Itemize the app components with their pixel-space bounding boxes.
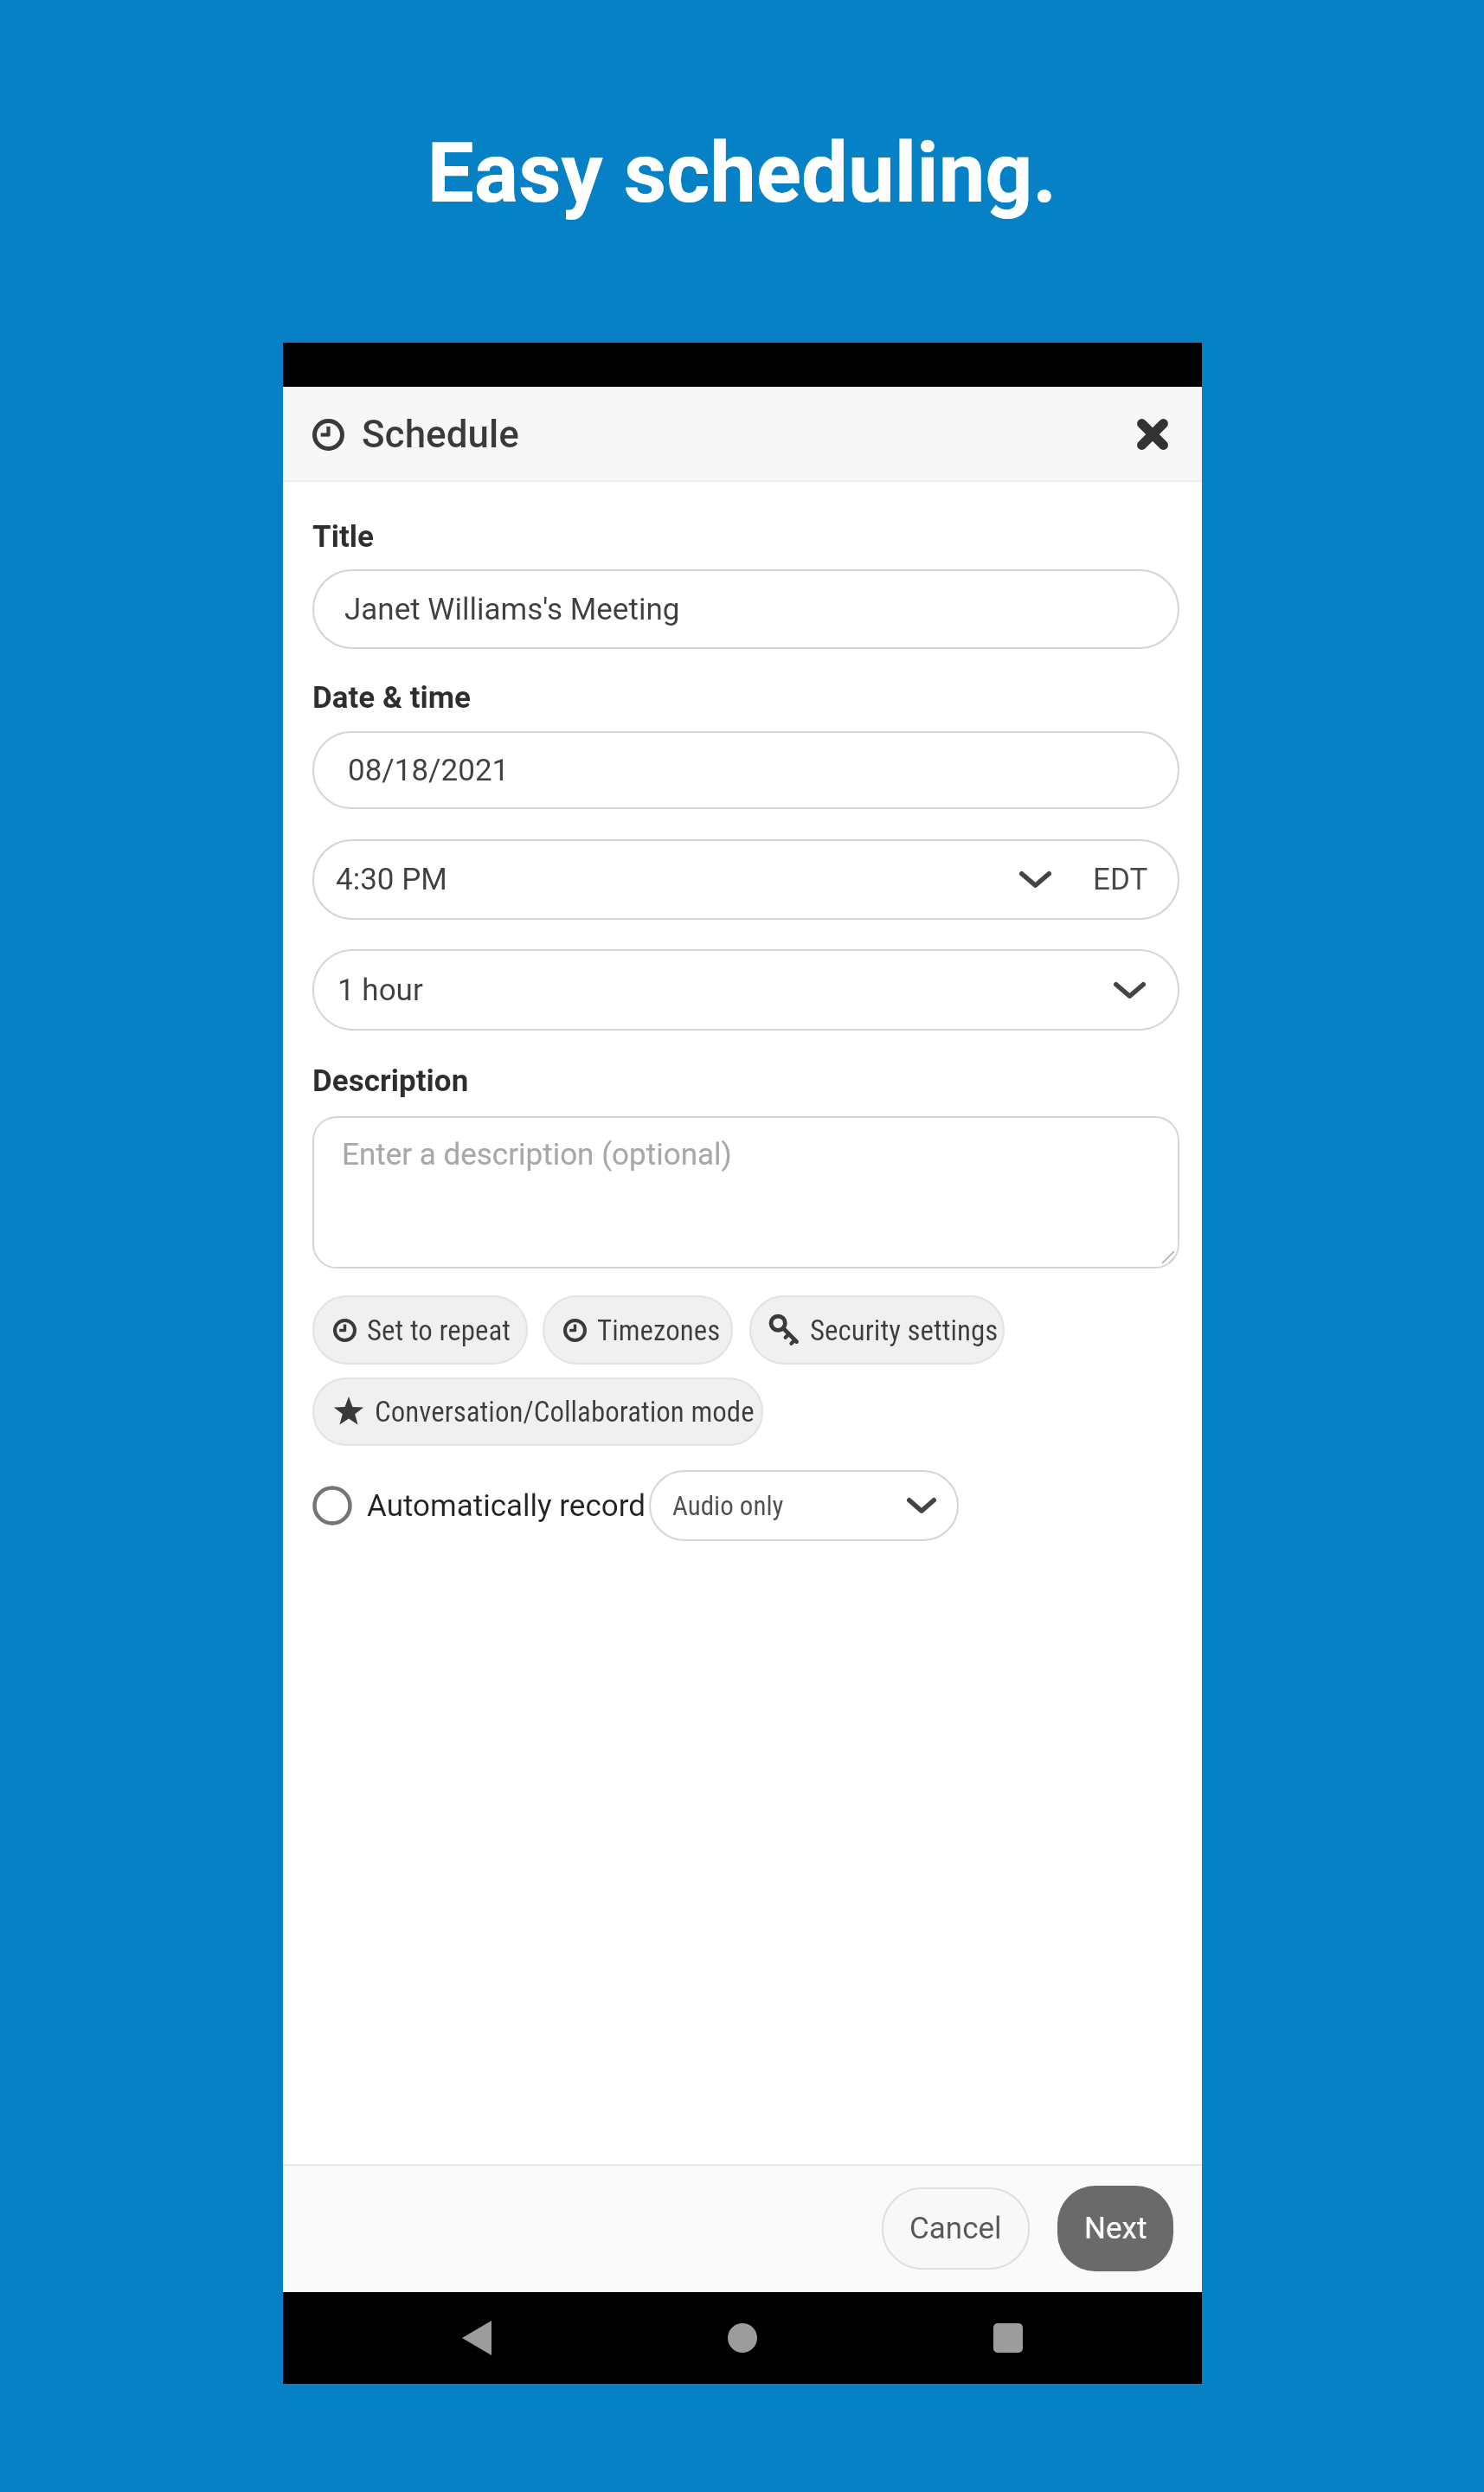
button[interactable]: Next [1057,2186,1173,2271]
staticText: Automatically record [367,1488,646,1524]
staticText: Easy scheduling. [0,125,1484,222]
button[interactable]: 1 hour [312,949,1179,1031]
button[interactable]: 08/18/2021 [312,731,1179,809]
staticText: 1 hour [337,973,423,1008]
button[interactable]: Enter a description (optional) [312,1116,1179,1268]
staticText: Set to repeat [367,1313,511,1347]
staticText: Audio only [672,1490,784,1521]
staticText: 08/18/2021 [348,753,510,788]
staticText: Next [1084,2211,1147,2246]
button[interactable]: Security settings [749,1295,1005,1365]
button[interactable]: Janet Williams's Meeting [312,569,1179,649]
button[interactable]: Audio only [649,1470,959,1541]
button[interactable]: Conversation/Collaboration mode [312,1378,763,1446]
button[interactable] [991,2321,1025,2355]
staticText: Enter a description (optional) [342,1137,732,1172]
button[interactable] [725,2321,760,2355]
staticText: Schedule [362,412,519,457]
button[interactable] [1127,408,1179,460]
button[interactable]: Cancel [882,2187,1030,2270]
staticText: 4:30 PM [336,862,447,897]
staticText: Timezones [597,1313,721,1347]
staticText: EDT [1093,862,1148,897]
button[interactable]: Set to repeat [312,1295,528,1365]
staticText: Title [312,519,374,555]
staticText: Cancel [909,2211,1002,2246]
staticText: Conversation/Collaboration mode [375,1395,755,1429]
button[interactable]: 4:30 PM [312,839,1179,920]
staticText: Security settings [810,1313,999,1347]
staticText: Date & time [312,680,471,716]
button[interactable] [459,2321,494,2355]
button[interactable]: Automatically record [312,1470,646,1541]
staticText: Description [312,1063,469,1099]
staticText: Janet Williams's Meeting [344,592,680,627]
button[interactable]: Timezones [543,1295,733,1365]
